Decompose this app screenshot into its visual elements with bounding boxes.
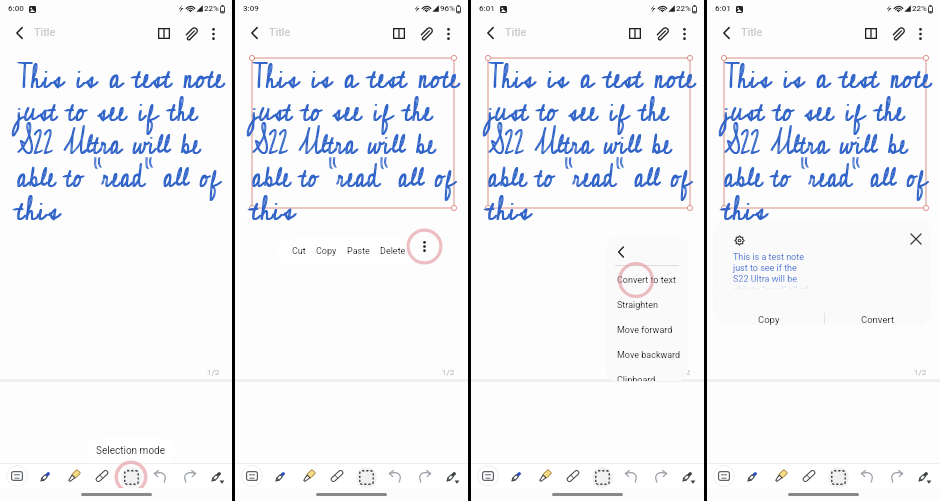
staticText: able to "read" all of bbox=[733, 285, 808, 296]
button[interactable]: Highlighter bbox=[534, 465, 556, 487]
button[interactable]: Eraser bbox=[798, 465, 820, 487]
staticText: 3:09 bbox=[243, 4, 259, 13]
staticText: Move forward bbox=[617, 325, 673, 336]
button[interactable]: Move backward bbox=[606, 343, 688, 368]
staticText: S22 Ultra will be bbox=[252, 112, 436, 176]
button[interactable]: Attach bbox=[651, 23, 672, 44]
button[interactable]: More options bbox=[203, 23, 224, 44]
button[interactable]: Undo bbox=[150, 465, 172, 487]
button[interactable]: Redo bbox=[178, 465, 200, 487]
button[interactable]: Redo bbox=[649, 465, 671, 487]
button[interactable]: Pen bbox=[506, 465, 528, 487]
staticText: This is a test note bbox=[252, 46, 460, 110]
staticText: just to see if the bbox=[17, 79, 198, 143]
button[interactable]: Pen settings bbox=[441, 465, 463, 487]
button[interactable]: Delete bbox=[375, 238, 411, 265]
button[interactable]: Reading mode bbox=[153, 23, 174, 44]
button[interactable]: Reading mode bbox=[388, 23, 409, 44]
button[interactable]: Highlighter bbox=[770, 465, 792, 487]
button[interactable]: Redo bbox=[885, 465, 907, 487]
staticText: able to "read" all of bbox=[724, 145, 929, 209]
button[interactable]: Reading mode bbox=[860, 23, 881, 44]
button[interactable]: Undo bbox=[857, 465, 879, 487]
staticText: 1/2 bbox=[914, 368, 927, 377]
staticText: 22% bbox=[912, 4, 927, 13]
staticText: able to "read" all of bbox=[253, 145, 458, 209]
staticText: S22 Ultra will be bbox=[725, 112, 909, 176]
button[interactable]: More options bbox=[438, 23, 459, 44]
staticText: 1/2 bbox=[678, 368, 691, 377]
button[interactable]: Eraser bbox=[91, 465, 113, 487]
button[interactable]: Undo bbox=[621, 465, 643, 487]
staticText: this bbox=[18, 178, 62, 242]
staticText: Title bbox=[34, 26, 56, 39]
button[interactable]: Convert to text bbox=[606, 268, 688, 293]
staticText: This is a test note bbox=[18, 46, 226, 110]
staticText: 96% bbox=[440, 4, 455, 13]
staticText: This is a test note bbox=[725, 46, 933, 110]
staticText: This is a test note bbox=[17, 46, 225, 110]
button[interactable]: Straighten bbox=[606, 293, 688, 318]
staticText: just to see if the bbox=[252, 79, 433, 143]
button[interactable]: Selection mode bbox=[821, 460, 855, 494]
staticText: this bbox=[724, 178, 768, 242]
button[interactable]: Highlighter bbox=[298, 465, 320, 487]
button[interactable]: More options bbox=[674, 23, 695, 44]
staticText: 6:01 bbox=[715, 4, 731, 13]
staticText: just to see if the bbox=[733, 263, 797, 274]
staticText: S22 Ultra will be bbox=[724, 112, 908, 176]
button[interactable]: Close bbox=[907, 230, 925, 248]
button[interactable]: Pen settings bbox=[677, 465, 699, 487]
staticText: this bbox=[252, 178, 296, 242]
button[interactable]: Back bbox=[244, 23, 264, 43]
button[interactable]: Copy bbox=[311, 238, 342, 265]
button[interactable]: Selection mode bbox=[114, 460, 148, 494]
button[interactable]: Selection mode bbox=[349, 460, 383, 494]
button[interactable]: Pen settings bbox=[206, 465, 228, 487]
button[interactable]: Convert bbox=[824, 308, 931, 325]
button[interactable]: Attach bbox=[415, 23, 436, 44]
button[interactable]: More options bbox=[910, 23, 931, 44]
button[interactable]: Back bbox=[716, 23, 736, 43]
button[interactable]: Back bbox=[9, 23, 29, 43]
button[interactable]: Pen bbox=[35, 465, 57, 487]
staticText: This is a test note bbox=[724, 46, 932, 110]
button[interactable]: Settings bbox=[729, 230, 749, 250]
button[interactable]: Pen settings bbox=[913, 465, 935, 487]
staticText: Convert to text bbox=[617, 275, 676, 286]
button[interactable]: Redo bbox=[413, 465, 435, 487]
button[interactable]: Pen bbox=[270, 465, 292, 487]
button[interactable]: Keyboard bbox=[713, 465, 735, 487]
button[interactable]: Move forward bbox=[606, 318, 688, 343]
button[interactable]: Keyboard bbox=[241, 465, 263, 487]
button[interactable]: Selection mode bbox=[87, 438, 175, 464]
button[interactable]: More bbox=[406, 233, 443, 260]
button[interactable]: Highlighter bbox=[63, 465, 85, 487]
button[interactable]: Selection mode bbox=[585, 460, 619, 494]
button[interactable]: Copy bbox=[713, 308, 824, 325]
button[interactable]: Keyboard bbox=[477, 465, 499, 487]
button[interactable]: Eraser bbox=[562, 465, 584, 487]
button[interactable]: Undo bbox=[385, 465, 407, 487]
staticText: S22 Ultra will be bbox=[18, 112, 202, 176]
button[interactable]: Eraser bbox=[326, 465, 348, 487]
staticText: Delete bbox=[380, 246, 406, 257]
button[interactable]: Cut bbox=[287, 238, 311, 265]
button[interactable]: Clipboard bbox=[606, 368, 688, 381]
staticText: Straighten bbox=[617, 300, 658, 311]
staticText: just to see if the bbox=[724, 79, 905, 143]
staticText: S22 Ultra will be bbox=[17, 112, 201, 176]
button[interactable]: Back bbox=[480, 23, 500, 43]
staticText: just to see if the bbox=[18, 79, 199, 143]
button[interactable]: Reading mode bbox=[624, 23, 645, 44]
staticText: S22 Ultra will be bbox=[733, 274, 798, 285]
staticText: Copy bbox=[316, 246, 337, 257]
button[interactable]: Attach bbox=[180, 23, 201, 44]
staticText: Title bbox=[269, 26, 291, 39]
staticText: just to see if the bbox=[488, 79, 669, 143]
button[interactable]: Pen bbox=[742, 465, 764, 487]
button[interactable]: Attach bbox=[887, 23, 908, 44]
button[interactable]: Back bbox=[610, 241, 632, 263]
button[interactable]: Paste bbox=[342, 238, 375, 265]
button[interactable]: Keyboard bbox=[6, 465, 28, 487]
